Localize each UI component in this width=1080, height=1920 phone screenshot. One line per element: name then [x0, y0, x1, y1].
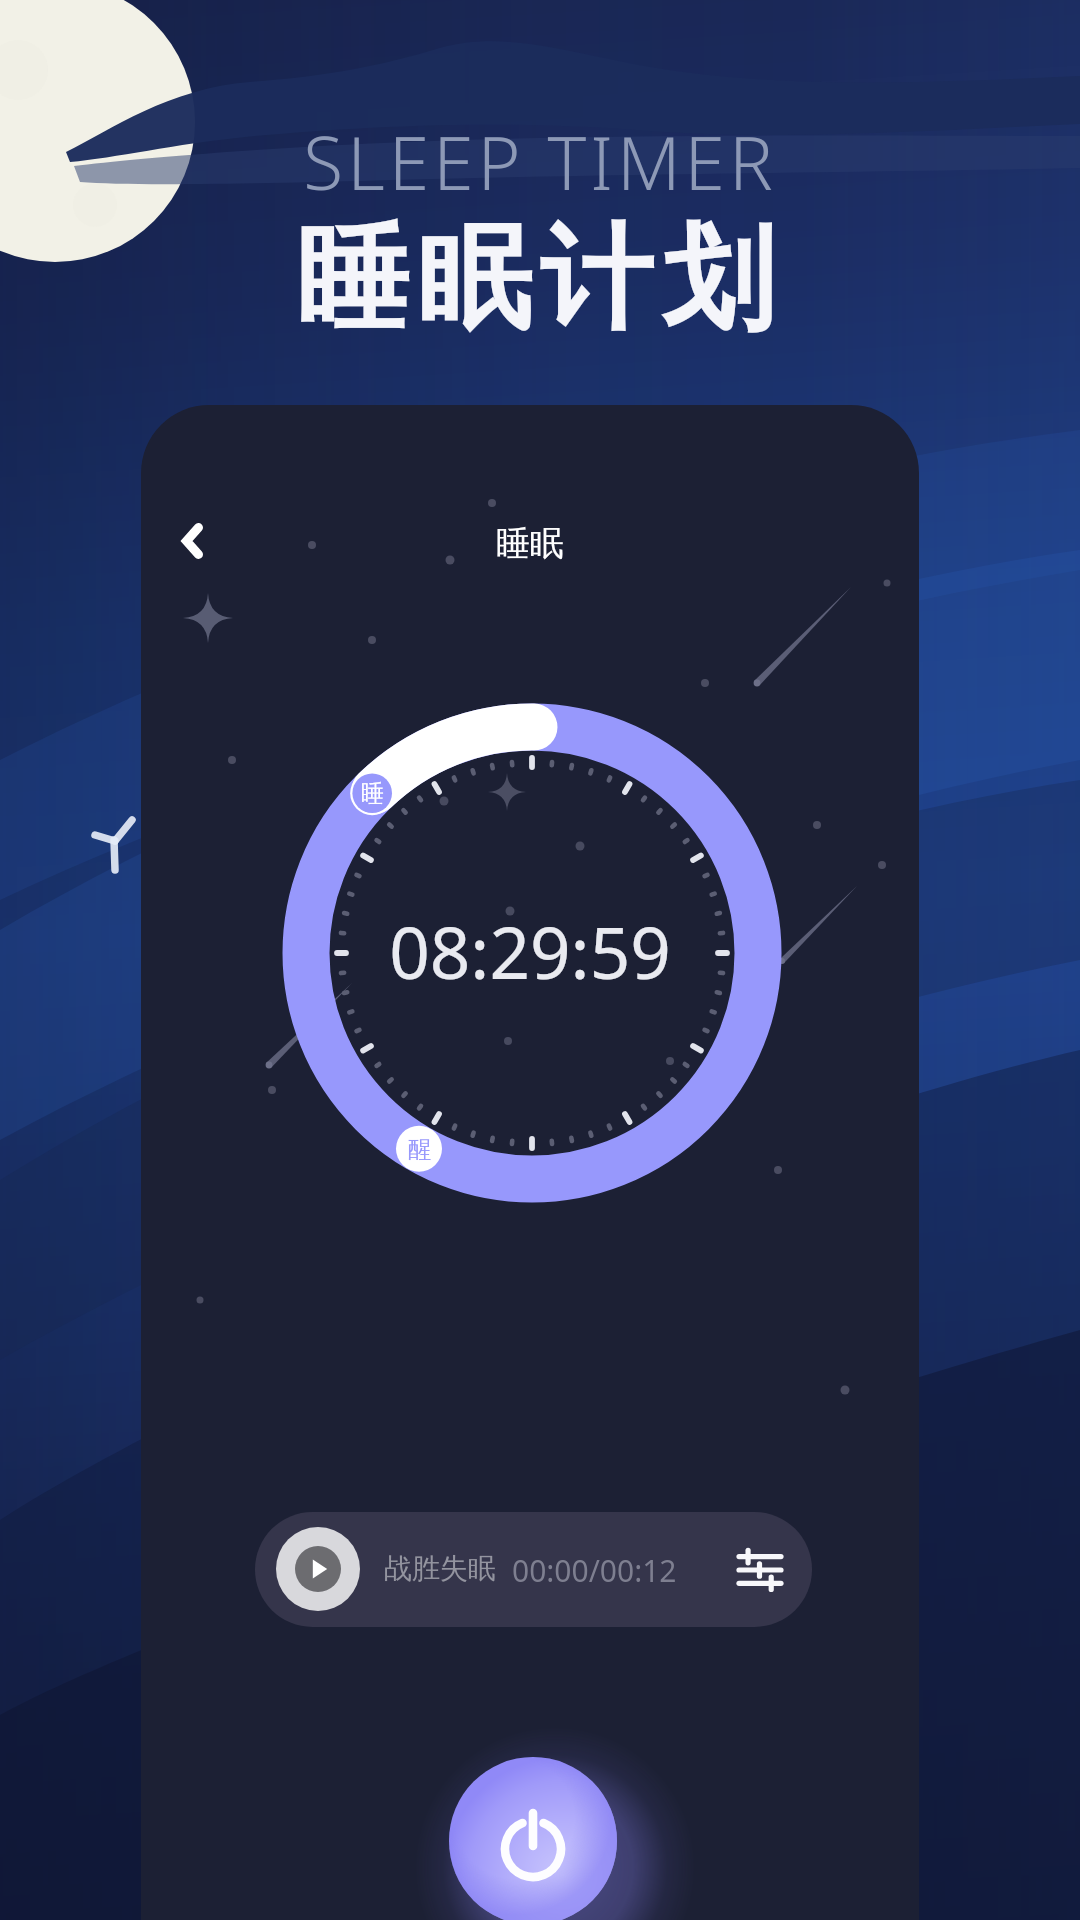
staticText: 00:00/00:12	[512, 1550, 677, 1591]
button[interactable]: Play	[255, 1512, 812, 1627]
button[interactable]: 睡	[350, 771, 394, 815]
staticText: 睡眠	[141, 522, 919, 565]
staticText: SLEEP TIMER	[0, 112, 1080, 211]
button[interactable]: Play	[276, 1527, 360, 1611]
button[interactable]: Equalizer	[721, 1539, 799, 1601]
button[interactable]: Back	[152, 501, 232, 581]
staticText: 睡	[361, 779, 384, 808]
staticText: 战胜失眠	[384, 1551, 496, 1586]
staticText: 睡眠计划	[0, 208, 1080, 350]
button[interactable]: Power	[373, 1681, 693, 1920]
button[interactable]: 醒	[397, 1127, 441, 1171]
staticText: 08:29:59	[141, 903, 919, 1000]
staticText: 醒	[408, 1135, 431, 1164]
